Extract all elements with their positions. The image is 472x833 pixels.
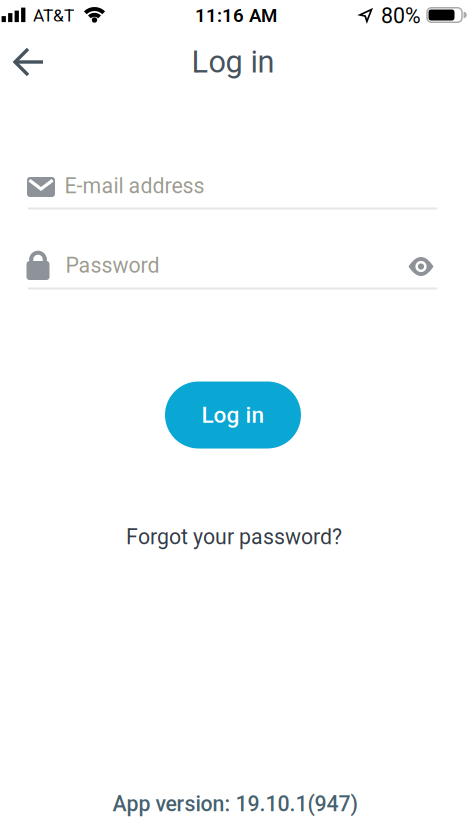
staticText: Password	[65, 253, 159, 278]
button[interactable]: Log in	[165, 381, 301, 448]
staticText: Log in	[191, 44, 274, 80]
button[interactable]: Forgot your password?	[126, 524, 342, 549]
staticText: E-mail address	[64, 173, 204, 198]
textField[interactable]: E-mail address	[64, 173, 436, 198]
staticText: 80%	[381, 3, 421, 28]
button[interactable]: Show password	[399, 244, 443, 288]
button[interactable]: Back	[7, 40, 51, 84]
staticText: 11:16 AM	[195, 5, 277, 26]
staticText: Forgot your password?	[126, 524, 342, 549]
secureTextField[interactable]: Password	[65, 253, 395, 278]
staticText: AT&T	[33, 5, 74, 26]
staticText: Log in	[201, 402, 264, 428]
staticText: App version: 19.10.1(947)	[112, 791, 357, 816]
